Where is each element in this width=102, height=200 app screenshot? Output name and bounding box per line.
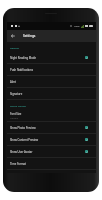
staticText: Show Content Preview [10, 138, 39, 142]
button[interactable]: Time Format [7, 158, 96, 170]
staticText: General [10, 46, 19, 49]
button[interactable]: Night Reading Mode [7, 52, 96, 64]
button[interactable]: Signature [7, 88, 96, 100]
staticText: Settings [23, 34, 36, 38]
staticText: Show Photo Preview [10, 126, 36, 130]
staticText: Text & Thread [10, 104, 26, 107]
button[interactable]: Back [7, 30, 19, 42]
button[interactable]: Font Size [7, 110, 96, 122]
staticText: 100% [74, 25, 80, 28]
button[interactable]: Show Photo Preview [7, 122, 96, 134]
button[interactable]: Show Content Preview [7, 134, 96, 146]
staticText: Time Format [10, 162, 27, 166]
staticText: Alert [10, 80, 17, 84]
staticText: Signature [10, 92, 23, 96]
staticText: Show User Avatar [10, 150, 33, 154]
staticText: Push Notifications [10, 68, 33, 72]
button[interactable]: Alert [7, 76, 96, 88]
staticText: Night Reading Mode [10, 56, 37, 60]
staticText: Normal [10, 117, 19, 120]
staticText: Font Size [10, 112, 22, 116]
button[interactable]: Show User Avatar [7, 146, 96, 158]
button[interactable]: Push Notifications [7, 64, 96, 76]
